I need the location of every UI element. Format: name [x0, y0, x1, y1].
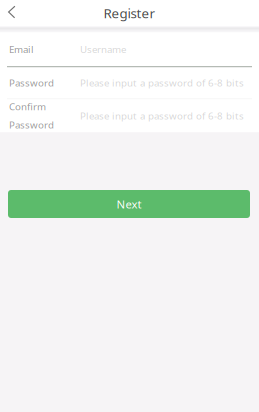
button[interactable]: Back	[0, 0, 25, 26]
button[interactable]: Email	[0, 32, 259, 66]
button[interactable]: Password	[0, 67, 259, 98]
button[interactable]: Next	[8, 190, 250, 218]
staticText: Next	[116, 196, 141, 212]
staticText: Email	[9, 43, 34, 56]
staticText: Password	[9, 118, 54, 131]
staticText: Password	[9, 76, 54, 89]
staticText: Register	[103, 4, 155, 22]
staticText: Confirm	[9, 100, 46, 113]
staticText: Username	[80, 43, 126, 56]
staticText: Please input a password of 6-8 bits	[80, 76, 244, 89]
staticText: Please input a password of 6-8 bits	[80, 109, 244, 122]
button[interactable]: Confirm	[0, 99, 259, 132]
